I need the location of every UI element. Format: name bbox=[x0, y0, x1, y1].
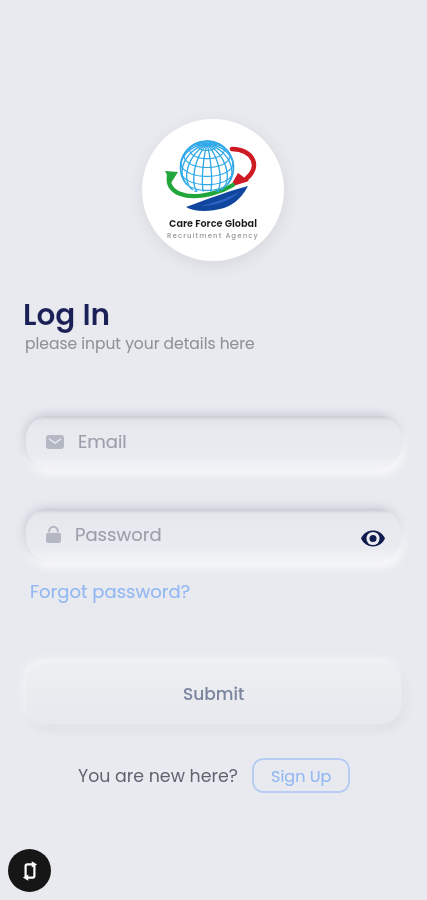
button[interactable]: Rotate screen bbox=[8, 849, 51, 892]
staticText: Log In bbox=[23, 294, 111, 335]
staticText: Recruitment Agency bbox=[167, 231, 259, 241]
staticText: please input your details here bbox=[25, 333, 255, 355]
button[interactable]: Forgot password? bbox=[29, 578, 192, 605]
button[interactable]: Submit bbox=[26, 663, 401, 724]
staticText: Password bbox=[75, 522, 162, 547]
staticText: Care Force Global bbox=[169, 217, 258, 231]
button[interactable]: Email bbox=[26, 416, 401, 467]
staticText: Sign Up bbox=[271, 765, 332, 787]
staticText: Submit bbox=[183, 682, 245, 706]
staticText: You are new here? bbox=[78, 764, 238, 788]
button[interactable]: Show password bbox=[358, 523, 388, 553]
button[interactable]: Password bbox=[26, 509, 401, 560]
button[interactable]: Sign Up bbox=[252, 758, 350, 793]
staticText: Email bbox=[78, 429, 127, 454]
